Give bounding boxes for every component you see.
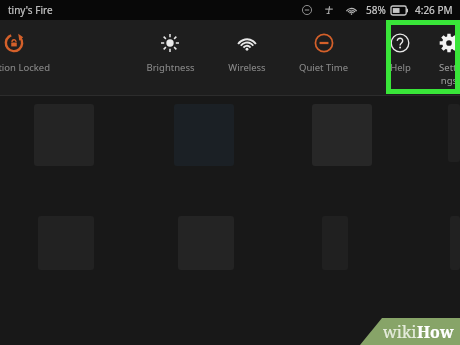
staticText: Quiet Time	[299, 61, 348, 74]
button[interactable]: Quiet Time	[285, 20, 362, 96]
staticText: Wireless	[228, 61, 266, 74]
staticText: 58%	[366, 3, 386, 17]
staticText: tiny's Fire	[8, 3, 53, 17]
staticText: wiki	[383, 321, 417, 343]
button[interactable]: Rotation Locked	[0, 20, 66, 96]
other: Settings highlighted	[386, 20, 460, 94]
button[interactable]: Brightness	[132, 20, 208, 96]
button[interactable]: Settings	[438, 20, 460, 96]
staticText: 4:26 PM	[415, 3, 453, 17]
button[interactable]: Wireless	[208, 20, 285, 96]
staticText: Help	[390, 61, 411, 74]
staticText: How	[417, 321, 454, 343]
button[interactable]: Help	[362, 20, 438, 96]
staticText: Brightness	[146, 61, 195, 74]
staticText: Rotation Locked	[0, 61, 50, 74]
staticText: Settings	[438, 61, 460, 87]
